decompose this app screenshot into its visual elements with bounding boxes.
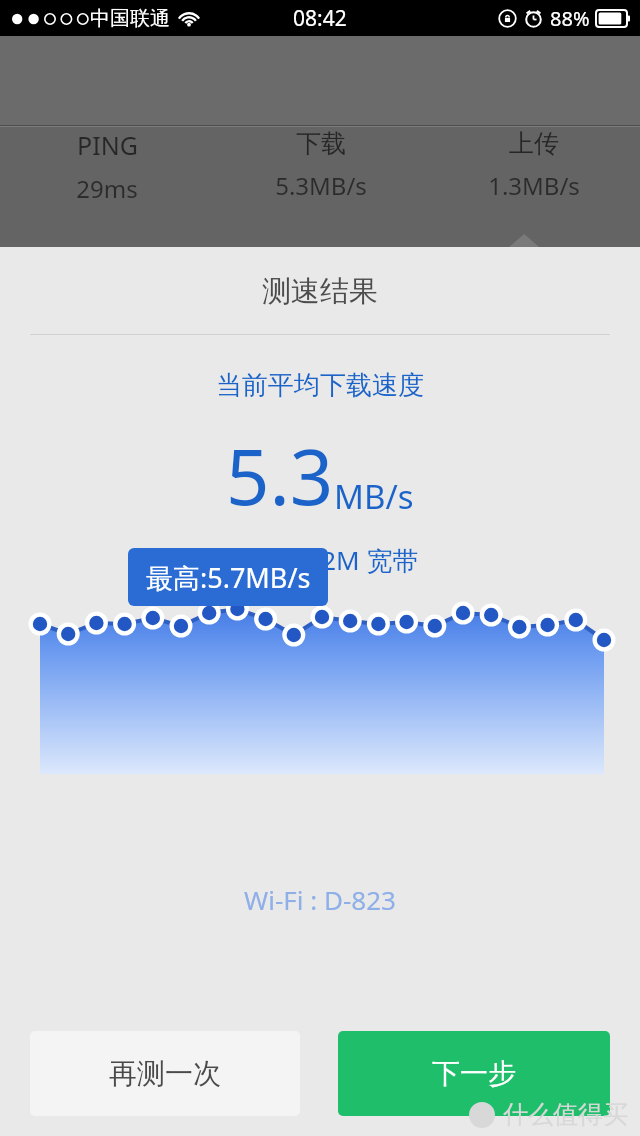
staticText: 再测一次 [109, 1056, 221, 1091]
button[interactable]: 下一步 [338, 1031, 610, 1116]
staticText: 测速结果 [0, 273, 640, 310]
button[interactable]: 再测一次 [30, 1031, 300, 1116]
staticText: 下载 [296, 128, 346, 159]
staticText: 5.3 [226, 424, 334, 528]
staticText: Wi-Fi : D-823 [0, 882, 640, 917]
staticText: 上传 [509, 128, 559, 159]
staticText: MB/s [334, 474, 414, 519]
staticText: 88% [550, 5, 590, 32]
staticText: PING [77, 128, 138, 162]
staticText: 当前平均下载速度 [0, 369, 640, 402]
staticText: 相当于 42M 宽带 [0, 542, 640, 578]
staticText: 下一步 [432, 1056, 516, 1091]
staticText: 中国联通 [90, 6, 170, 31]
staticText: 1.3MB/s [488, 169, 580, 202]
staticText: 08:42 [293, 4, 347, 33]
staticText: 5.3MB/s [275, 169, 367, 202]
staticText: 29ms [76, 172, 138, 205]
staticText: 什么值得买 [503, 1099, 628, 1130]
staticText: 最高:5.7MB/s [146, 559, 311, 596]
